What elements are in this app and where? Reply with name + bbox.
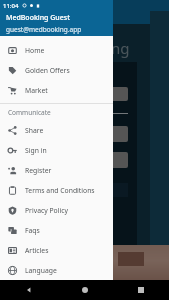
- staticText: Golden Offers: [25, 66, 70, 75]
- staticText: MedBooking Guest: [6, 13, 70, 23]
- staticText: Terms and Conditions: [25, 186, 95, 195]
- staticText: Privacy Policy: [25, 206, 68, 215]
- button[interactable]: Home: [57, 280, 113, 300]
- button[interactable]: Home: [0, 40, 113, 60]
- button[interactable]: Share: [0, 120, 113, 140]
- button[interactable]: Sign in: [0, 140, 113, 160]
- button[interactable]: Golden Offers: [0, 60, 113, 80]
- button[interactable]: Language: [0, 260, 113, 280]
- staticText: Market: [25, 86, 48, 95]
- staticText: MedBooking: [40, 38, 130, 58]
- button[interactable]: Privacy Policy: [0, 200, 113, 220]
- staticText: Share: [25, 126, 44, 135]
- button[interactable]: Register: [0, 160, 113, 180]
- staticText: 11:04: [3, 2, 19, 10]
- staticText: Faqs: [25, 226, 40, 235]
- staticText: Home: [25, 46, 45, 55]
- button[interactable]: Terms and Conditions: [0, 180, 113, 200]
- staticText: Communicate: [8, 108, 51, 117]
- button[interactable]: Recents: [113, 280, 169, 300]
- button[interactable]: Articles: [0, 240, 113, 260]
- button[interactable]: Faqs: [0, 220, 113, 240]
- button[interactable]: Market: [0, 80, 113, 100]
- staticText: Register: [25, 166, 52, 175]
- staticText: Language: [25, 266, 57, 275]
- staticText: Articles: [25, 246, 49, 255]
- staticText: guest@medbooking.app: [6, 25, 82, 34]
- staticText: Sign in: [25, 146, 47, 155]
- button[interactable]: Back: [0, 280, 57, 300]
